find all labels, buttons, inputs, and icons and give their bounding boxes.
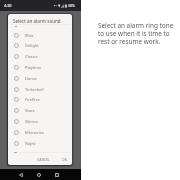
staticText: 38% — [68, 3, 75, 8]
button[interactable]: OK — [61, 156, 68, 163]
staticText: CANCEL — [37, 157, 51, 162]
staticText: Silence — [25, 119, 39, 124]
staticText: Select an alarm sound — [13, 18, 61, 24]
staticText: Fireflies — [25, 97, 40, 102]
button[interactable]: Bliss — [8, 30, 72, 41]
button[interactable]: Stars — [8, 105, 72, 116]
button[interactable]: Memories — [8, 127, 72, 138]
staticText: Tinkerbell — [25, 87, 44, 92]
staticText: Playtime — [25, 65, 42, 70]
button[interactable]: Classic — [8, 51, 72, 62]
staticText: Stars — [25, 108, 35, 113]
staticText: Memories — [25, 130, 44, 135]
button[interactable]: CANCEL — [36, 156, 52, 163]
button[interactable]: Fireflies — [8, 94, 72, 105]
staticText: Night — [25, 141, 36, 146]
staticText: Delight — [25, 43, 39, 48]
button[interactable]: Home — [34, 170, 43, 179]
staticText: Classic — [25, 54, 38, 59]
staticText: Dance — [25, 76, 37, 81]
button[interactable]: Silence — [8, 116, 72, 127]
button[interactable]: Recents — [52, 170, 61, 179]
button[interactable]: Tinkerbell — [8, 84, 72, 95]
staticText: Bliss — [25, 33, 34, 38]
staticText: 4:30 — [4, 3, 12, 8]
button[interactable]: Playtime — [8, 62, 72, 73]
staticText: Select an alarm ring tone to use when it… — [98, 21, 174, 46]
staticText: OK — [62, 157, 67, 162]
button[interactable]: Dance — [8, 73, 72, 84]
button[interactable]: Night — [8, 138, 72, 149]
button[interactable]: Delight — [8, 40, 72, 51]
button[interactable]: Back — [16, 170, 25, 179]
